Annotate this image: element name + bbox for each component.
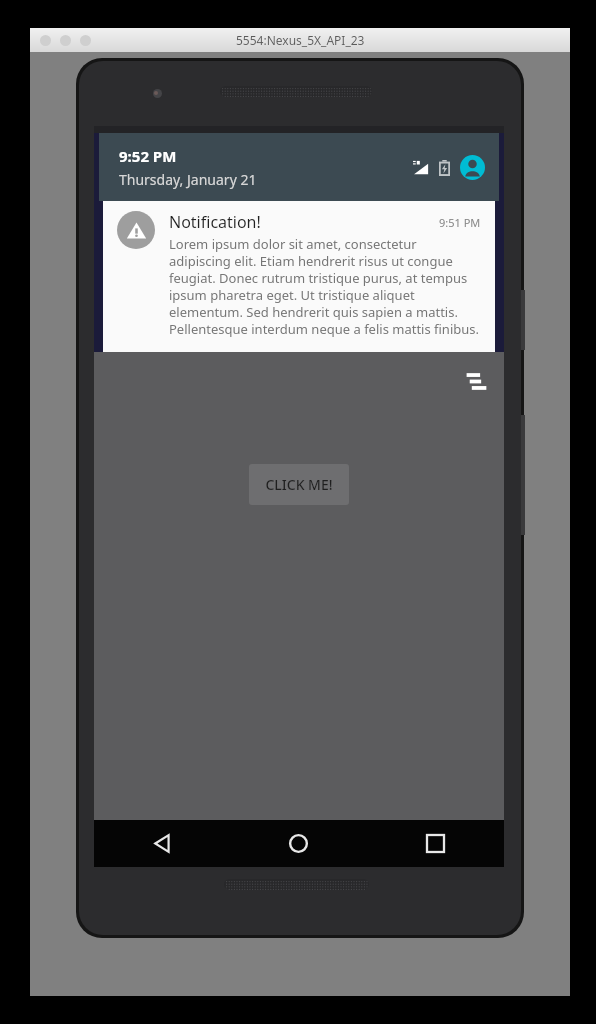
staticText: CLICK ME! [265,475,333,494]
button[interactable]: CLICK ME! [249,464,349,505]
button[interactable]: Recents [367,820,504,867]
button[interactable]: 9:52 PM [94,133,504,201]
button[interactable]: Home [230,820,367,867]
button[interactable]: Notification! [103,201,495,352]
staticText: Lorem ipsum dolor sit amet, consectetur … [169,235,481,338]
staticText: 9:51 PM [439,215,481,230]
staticText: 5554:Nexus_5X_API_23 [236,32,365,48]
staticText: Notification! [169,211,439,233]
staticText: 9:52 PM [119,146,177,166]
button[interactable]: Notification settings [462,366,492,396]
button[interactable]: User profile [460,155,485,180]
staticText: Thursday, January 21 [119,170,257,189]
button[interactable]: Back [94,820,230,867]
